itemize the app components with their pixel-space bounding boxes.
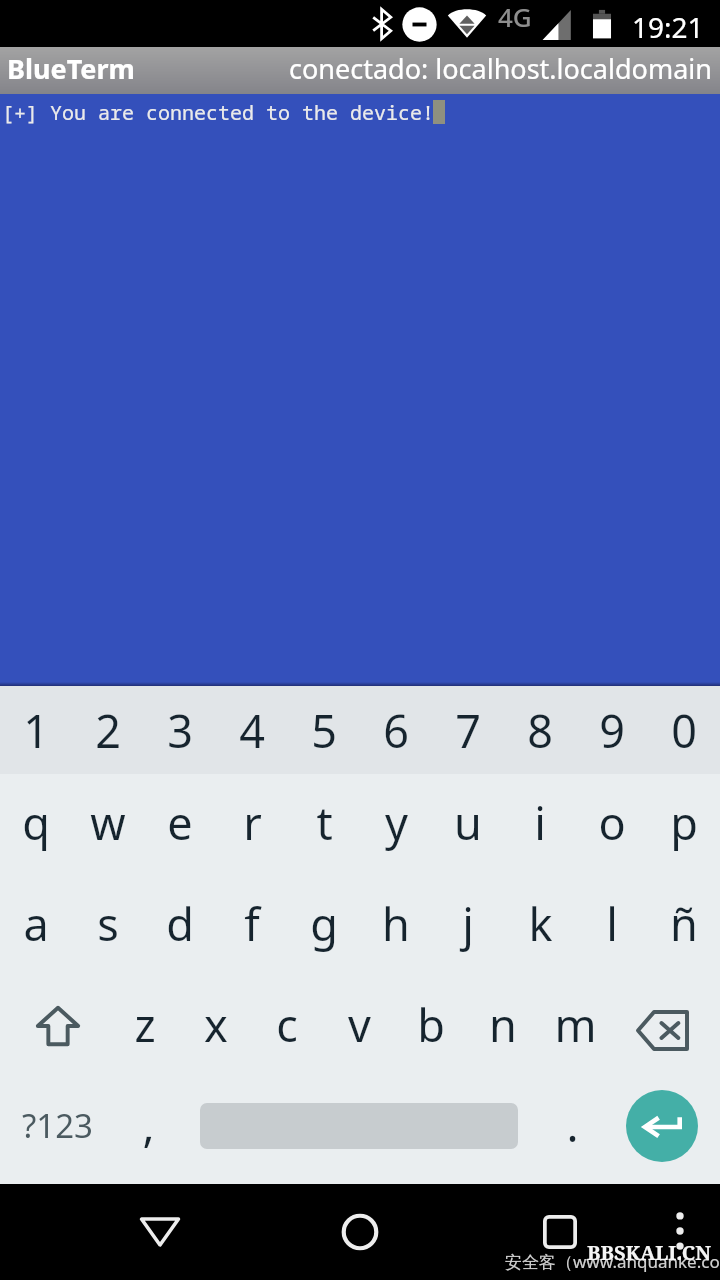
- staticText: k: [528, 893, 553, 954]
- staticText: o: [598, 792, 626, 853]
- button[interactable]: Home: [330, 1184, 390, 1280]
- button[interactable]: ñ: [648, 876, 720, 976]
- staticText: .: [566, 1094, 579, 1155]
- button[interactable]: Shift: [0, 976, 109, 1078]
- staticText: i: [534, 792, 546, 853]
- button[interactable]: 4: [216, 686, 288, 774]
- staticText: 8: [527, 700, 553, 761]
- button[interactable]: 6: [360, 686, 432, 774]
- button[interactable]: g: [288, 876, 360, 976]
- button[interactable]: 7: [432, 686, 504, 774]
- staticText: 6: [383, 700, 409, 761]
- button[interactable]: j: [432, 876, 504, 976]
- staticText: 9: [599, 700, 625, 761]
- button[interactable]: 9: [576, 686, 648, 774]
- staticText: 4G: [498, 0, 532, 34]
- button[interactable]: 1: [0, 686, 72, 774]
- button[interactable]: Enter: [608, 1078, 720, 1184]
- button[interactable]: f: [216, 876, 288, 976]
- staticText: v: [348, 994, 371, 1055]
- button[interactable]: i: [504, 774, 576, 876]
- button[interactable]: r: [216, 774, 288, 876]
- staticText: s: [97, 893, 119, 954]
- staticText: BBSKALI.CN: [587, 1239, 711, 1266]
- staticText: 1: [23, 700, 49, 761]
- button[interactable]: 5: [288, 686, 360, 774]
- button[interactable]: t: [288, 774, 360, 876]
- button[interactable]: 0: [648, 686, 720, 774]
- button[interactable]: k: [504, 876, 576, 976]
- button[interactable]: 2: [72, 686, 144, 774]
- button[interactable]: Backspace: [611, 976, 720, 1078]
- button[interactable]: c: [251, 976, 323, 1078]
- staticText: n: [489, 994, 517, 1055]
- button[interactable]: BlueTerm: [7, 50, 135, 87]
- button[interactable]: v: [323, 976, 395, 1078]
- button[interactable]: l: [576, 876, 648, 976]
- button[interactable]: ?123: [0, 1078, 114, 1184]
- staticText: q: [22, 792, 50, 853]
- button[interactable]: s: [72, 876, 144, 976]
- staticText: 4: [239, 700, 265, 761]
- staticText: 7: [455, 700, 481, 761]
- staticText: h: [382, 893, 410, 954]
- button[interactable]: e: [144, 774, 216, 876]
- staticText: a: [23, 893, 49, 954]
- staticText: z: [134, 994, 156, 1055]
- staticText: w: [90, 792, 126, 853]
- button[interactable]: z: [109, 976, 180, 1078]
- button[interactable]: o: [576, 774, 648, 876]
- staticText: d: [166, 893, 194, 954]
- staticText: t: [316, 792, 333, 853]
- staticText: y: [385, 792, 408, 853]
- staticText: conectado: localhost.localdomain: [289, 50, 712, 87]
- staticText: g: [310, 893, 338, 954]
- staticText: x: [204, 994, 228, 1055]
- staticText: 2: [95, 700, 121, 761]
- button[interactable]: h: [360, 876, 432, 976]
- staticText: l: [606, 893, 618, 954]
- staticText: j: [462, 893, 474, 954]
- staticText: ?123: [22, 1103, 93, 1148]
- staticText: u: [454, 792, 482, 853]
- staticText: 安全客（www.anquanke.com）: [505, 1250, 720, 1273]
- staticText: 19:21: [632, 8, 704, 46]
- button[interactable]: x: [180, 976, 251, 1078]
- button[interactable]: Space: [182, 1078, 536, 1184]
- staticText: m: [554, 994, 597, 1055]
- staticText: b: [417, 994, 445, 1055]
- staticText: c: [276, 994, 298, 1055]
- staticText: p: [670, 792, 698, 853]
- button[interactable]: a: [0, 876, 72, 976]
- button[interactable]: More options: [658, 1184, 702, 1280]
- button[interactable]: m: [539, 976, 611, 1078]
- staticText: e: [167, 792, 193, 853]
- button[interactable]: w: [72, 774, 144, 876]
- button[interactable]: Recents: [530, 1184, 590, 1280]
- button[interactable]: u: [432, 774, 504, 876]
- button[interactable]: 8: [504, 686, 576, 774]
- button[interactable]: q: [0, 774, 72, 876]
- staticText: r: [243, 792, 262, 853]
- button[interactable]: 3: [144, 686, 216, 774]
- button[interactable]: ,: [114, 1078, 182, 1184]
- button[interactable]: b: [395, 976, 467, 1078]
- staticText: [+] You are connected to the device!: [2, 99, 434, 126]
- button[interactable]: .: [536, 1078, 608, 1184]
- staticText: 5: [311, 700, 337, 761]
- button[interactable]: p: [648, 774, 720, 876]
- staticText: ,: [142, 1094, 155, 1155]
- staticText: ñ: [670, 893, 698, 954]
- button[interactable]: Back: [130, 1184, 190, 1280]
- button[interactable]: n: [467, 976, 539, 1078]
- staticText: 3: [167, 700, 193, 761]
- staticText: f: [244, 893, 260, 954]
- staticText: 0: [671, 700, 697, 761]
- button[interactable]: d: [144, 876, 216, 976]
- button[interactable]: y: [360, 774, 432, 876]
